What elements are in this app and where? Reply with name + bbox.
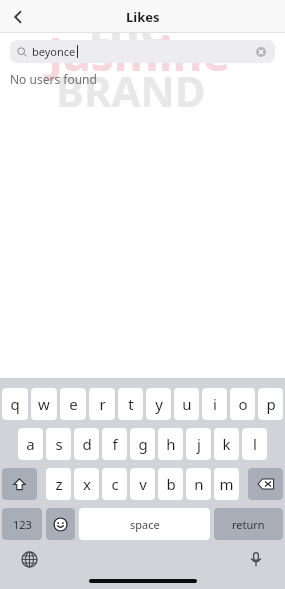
button[interactable]: q [2,388,28,420]
staticText: o [238,394,248,414]
button[interactable]: m [214,468,239,500]
button[interactable]: p [258,388,283,420]
button[interactable]: Change keyboard [16,546,42,572]
button[interactable]: space [79,508,210,540]
button[interactable]: o [230,388,255,420]
button[interactable]: t [118,388,143,420]
button[interactable]: k [214,428,239,460]
button[interactable]: n [186,468,211,500]
button[interactable]: v [130,468,155,500]
button[interactable]: b [158,468,183,500]
staticText: j [197,434,201,454]
button[interactable]: beyonce [10,40,275,63]
staticText: space [130,517,160,532]
staticText: i [213,394,217,414]
button[interactable]: w [31,388,57,420]
button[interactable]: i [202,388,227,420]
staticText: l [253,434,257,454]
staticText: a [26,434,35,454]
staticText: c [111,474,119,494]
staticText: v [139,474,147,494]
button[interactable]: Emoji [46,508,75,540]
staticText: Likes [126,8,160,26]
button[interactable]: Back [0,0,36,33]
staticText: b [166,474,176,494]
button[interactable]: s [46,428,71,460]
staticText: p [266,394,276,414]
staticText: 123 [13,517,32,532]
staticText: m [219,474,234,494]
button[interactable]: x [74,468,99,500]
staticText: q [10,394,20,414]
staticText: k [222,434,231,454]
button[interactable]: c [102,468,127,500]
button[interactable]: u [174,388,199,420]
button[interactable]: y [146,388,171,420]
button[interactable]: Backspace [248,468,283,500]
button[interactable]: Shift [2,468,37,500]
staticText: w [38,394,50,414]
button[interactable]: d [74,428,99,460]
button[interactable]: j [186,428,211,460]
staticText: BRAND [56,62,206,119]
staticText: y [155,394,163,414]
staticText: g [138,434,148,454]
staticText: e [69,394,78,414]
button[interactable]: r [89,388,115,420]
staticText: r [99,394,106,414]
button[interactable]: Dictation [243,546,269,572]
staticText: n [194,474,204,494]
button[interactable]: e [60,388,86,420]
staticText: Jasmine [48,22,230,85]
staticText: No users found [10,71,97,87]
button[interactable]: return [214,508,283,540]
staticText: x [83,474,91,494]
button[interactable]: f [102,428,127,460]
button[interactable]: z [46,468,71,500]
staticText: f [112,434,118,454]
button[interactable]: a [18,428,43,460]
staticText: z [55,474,63,494]
staticText: return [232,517,265,532]
staticText: beyonce [32,44,76,59]
staticText: t [128,394,134,414]
staticText: d [82,434,92,454]
staticText: the [88,0,169,59]
staticText: h [166,434,176,454]
button[interactable]: h [158,428,183,460]
button[interactable]: 123 [2,508,42,540]
staticText: s [55,434,63,454]
staticText: u [182,394,192,414]
button[interactable]: Clear text [253,44,269,60]
button[interactable]: g [130,428,155,460]
button[interactable]: l [242,428,267,460]
